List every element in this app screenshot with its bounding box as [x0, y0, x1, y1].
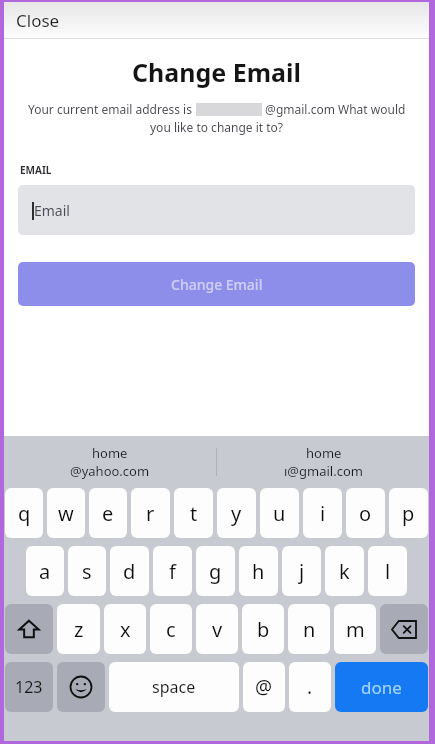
button[interactable]: 123 [5, 662, 53, 712]
staticText: g [209, 558, 222, 585]
button[interactable]: f [153, 546, 192, 596]
button[interactable]: space [109, 662, 239, 712]
staticText: Change Email [4, 55, 429, 89]
staticText: q [18, 500, 31, 527]
button[interactable]: e [89, 488, 127, 538]
staticText: ı@gmail.com [284, 462, 363, 480]
button[interactable]: s [68, 546, 106, 596]
staticText: y [231, 500, 242, 527]
staticText: home [92, 444, 128, 462]
staticText: z [74, 616, 84, 643]
staticText: h [252, 558, 265, 585]
button[interactable]: x [104, 604, 146, 654]
staticText: . [307, 674, 313, 700]
staticText: @ [255, 674, 273, 700]
staticText: p [402, 500, 415, 527]
button[interactable]: v [196, 604, 238, 654]
staticText: space [152, 676, 196, 698]
staticText: w [58, 500, 74, 527]
staticText: @yahoo.com [70, 462, 150, 480]
staticText: r [146, 500, 155, 527]
staticText: t [190, 500, 198, 527]
staticText: s [82, 558, 92, 585]
button[interactable]: k [325, 546, 364, 596]
button[interactable]: l [368, 546, 407, 596]
button[interactable]: Backspace [380, 604, 428, 654]
button[interactable]: m [334, 604, 376, 654]
staticText: i [320, 500, 326, 527]
staticText: k [339, 558, 350, 585]
staticText: v [212, 616, 223, 643]
button[interactable]: c [150, 604, 192, 654]
button[interactable]: Close [12, 5, 64, 36]
button[interactable]: y [217, 488, 256, 538]
button[interactable]: Shift [5, 604, 53, 654]
staticText: j [299, 558, 305, 585]
staticText: you like to change it to? [150, 119, 284, 135]
button[interactable]: i [303, 488, 342, 538]
staticText: u [273, 500, 286, 527]
staticText: e [102, 500, 114, 527]
staticText: a [39, 558, 51, 585]
staticText: m [346, 616, 365, 643]
staticText: n [303, 616, 316, 643]
button[interactable]: t [174, 488, 213, 538]
button[interactable]: d [110, 546, 149, 596]
staticText: l [385, 558, 391, 585]
staticText: @gmail.com What would [262, 101, 406, 117]
button[interactable]: w [47, 488, 85, 538]
button[interactable]: o [346, 488, 385, 538]
staticText: home [306, 444, 342, 462]
staticText: Your current email address is [28, 101, 196, 117]
button[interactable]: r [131, 488, 170, 538]
staticText: EMAIL [20, 163, 52, 177]
button[interactable]: h [239, 546, 278, 596]
staticText: Change Email [171, 275, 263, 294]
button[interactable]: j [282, 546, 321, 596]
staticText: b [257, 616, 270, 643]
button[interactable]: b [242, 604, 284, 654]
button[interactable]: home [217, 436, 429, 488]
staticText: Close [16, 9, 60, 32]
button[interactable]: p [389, 488, 428, 538]
staticText: f [169, 558, 176, 585]
staticText: c [166, 616, 176, 643]
button[interactable]: g [196, 546, 235, 596]
button[interactable]: n [288, 604, 330, 654]
button[interactable]: @ [243, 662, 285, 712]
button[interactable]: z [57, 604, 100, 654]
button[interactable]: . [289, 662, 331, 712]
button[interactable]: Emoji [57, 662, 105, 712]
button[interactable]: done [335, 662, 428, 712]
staticText: d [123, 558, 136, 585]
button[interactable]: home [4, 436, 216, 488]
staticText: done [361, 676, 402, 699]
button[interactable]: Change Email [18, 262, 415, 306]
button[interactable]: q [5, 488, 43, 538]
button[interactable]: Email [18, 185, 415, 235]
button[interactable]: a [26, 546, 64, 596]
staticText: Email [34, 201, 70, 220]
staticText: o [359, 500, 372, 527]
staticText: x [120, 616, 131, 643]
button[interactable]: u [260, 488, 299, 538]
staticText: 123 [15, 676, 43, 698]
